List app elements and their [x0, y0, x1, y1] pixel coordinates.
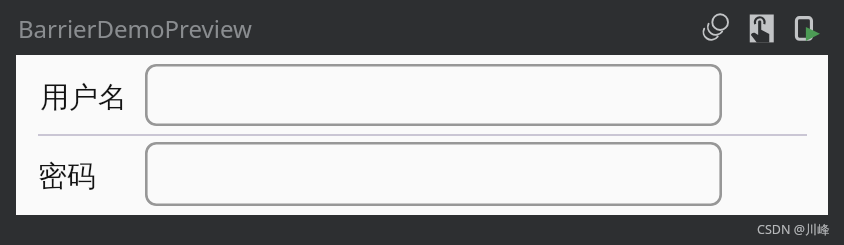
button[interactable]	[145, 64, 722, 126]
staticText: CSDN @川峰	[757, 221, 830, 238]
staticText: 密码	[38, 158, 96, 195]
button[interactable]: Start interactive preview	[744, 11, 777, 44]
staticText: 用户名	[40, 79, 127, 116]
button[interactable]: Preview variants	[698, 11, 732, 45]
staticText: BarrierDemoPreview	[18, 12, 252, 45]
button[interactable]	[145, 142, 722, 206]
button[interactable]: Run preview on device	[791, 11, 824, 44]
